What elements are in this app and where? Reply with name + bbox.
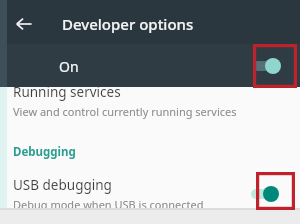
button[interactable]: Back — [10, 10, 38, 38]
staticText: USB debugging — [13, 176, 112, 194]
staticText: Developer options — [62, 14, 194, 34]
staticText: Debugging — [13, 144, 76, 160]
button[interactable]: Toggle — [250, 185, 280, 203]
staticText: On — [59, 57, 79, 76]
button[interactable]: Developer options on — [0, 44, 300, 87]
button[interactable]: USB debugging — [0, 173, 300, 214]
staticText: View and control currently running servi… — [13, 104, 237, 119]
button[interactable]: Running services — [0, 87, 300, 129]
staticText: Debug mode when USB is connected — [13, 197, 204, 212]
staticText: Running services — [13, 83, 121, 101]
button[interactable]: Toggle — [252, 57, 282, 75]
